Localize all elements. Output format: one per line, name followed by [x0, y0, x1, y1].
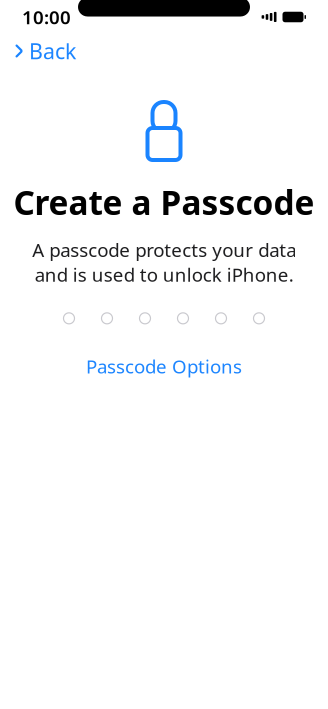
- button[interactable]: Back: [4, 31, 86, 71]
- staticText: Passcode Options: [86, 354, 242, 379]
- staticText: Back: [29, 37, 76, 65]
- staticText: 10:00: [22, 5, 71, 29]
- staticText: A passcode protects your data and is use…: [32, 237, 296, 287]
- staticText: Create a Passcode: [13, 180, 314, 224]
- button[interactable]: Passcode Options: [72, 348, 256, 385]
